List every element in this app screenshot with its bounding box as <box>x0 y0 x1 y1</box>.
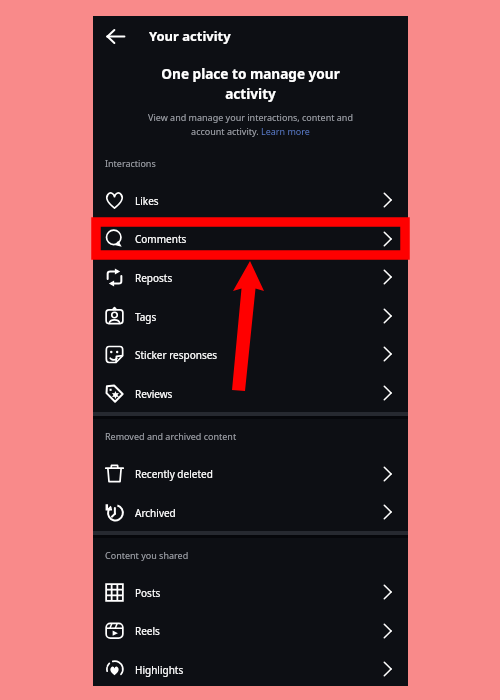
button[interactable]: Posts <box>93 573 408 612</box>
staticText: Comments <box>135 232 187 246</box>
staticText: Your activity <box>149 27 231 45</box>
staticText: Sticker responses <box>135 348 218 362</box>
staticText: Reviews <box>135 387 173 401</box>
button[interactable]: Reviews <box>93 374 408 413</box>
staticText: View and manage your interactions, conte… <box>138 111 363 138</box>
button[interactable]: Highlights <box>93 650 408 689</box>
button[interactable]: Recently deleted <box>93 454 408 493</box>
button[interactable]: Sticker responses <box>93 335 408 374</box>
button[interactable]: Reels <box>93 611 408 650</box>
staticText: Reels <box>135 624 160 638</box>
staticText: Content you shared <box>105 549 189 561</box>
button[interactable]: Archived <box>93 493 408 532</box>
staticText: Removed and archived content <box>105 430 237 442</box>
staticText: Highlights <box>135 663 184 677</box>
staticText: Interactions <box>105 157 156 169</box>
button[interactable]: Back <box>99 20 131 52</box>
staticText: Likes <box>135 194 159 208</box>
button[interactable]: Reposts <box>93 258 408 297</box>
staticText: Posts <box>135 586 161 600</box>
button[interactable]: Comments <box>93 219 408 258</box>
button[interactable]: Tags <box>93 297 408 336</box>
button[interactable]: Likes <box>93 181 408 220</box>
staticText: Archived <box>135 506 176 520</box>
staticText: Recently deleted <box>135 467 213 481</box>
staticText: One place to manage your activity <box>155 64 346 103</box>
staticText: Reposts <box>135 271 173 285</box>
staticText: Tags <box>135 310 157 324</box>
